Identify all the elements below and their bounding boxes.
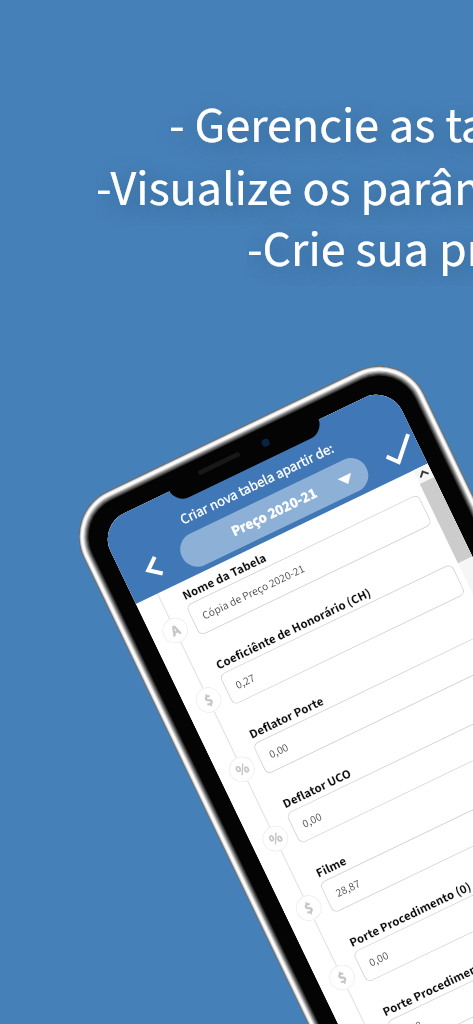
button[interactable]: Back — [130, 544, 178, 592]
staticText: Porte Procedimento (1) — [380, 947, 473, 1022]
staticText: - Gerencie as tabelas — [169, 91, 473, 162]
staticText: 0,27 — [233, 669, 258, 693]
staticText: Deflator Porte — [246, 692, 327, 744]
staticText: 0,00 — [366, 947, 392, 970]
staticText: Coeficiênte de Honorário (CH) — [213, 584, 375, 675]
staticText: Porte Procedimento (2) — [413, 1016, 473, 1024]
staticText: $ — [334, 967, 350, 989]
staticText: $ — [201, 689, 217, 712]
staticText: Nome da Tabela — [179, 549, 270, 606]
staticText: Deflator UCO — [280, 764, 355, 814]
staticText: -Visualize os parâmetros de — [96, 154, 473, 225]
staticText: 0,00 — [266, 739, 292, 762]
staticText: -Crie sua própria tabela — [247, 215, 473, 286]
button[interactable]: Preço 2020-21 — [174, 452, 374, 573]
staticText: Preço 2020-21 — [228, 483, 321, 542]
staticText: % — [232, 757, 253, 782]
staticText: Filme — [313, 852, 350, 883]
staticText: $ — [301, 897, 317, 920]
staticText: Criar nova tabela apartir de: — [176, 438, 338, 530]
button[interactable]: Save — [371, 423, 426, 479]
staticText: Cópia de Preço 2020-21 — [199, 560, 307, 623]
staticText: A — [167, 619, 184, 642]
staticText: 0,00 — [299, 808, 325, 831]
staticText: 2,78 — [400, 1016, 425, 1024]
staticText: % — [266, 827, 286, 851]
staticText: 28,87 — [333, 875, 363, 901]
staticText: Porte Procedimento (0) — [346, 877, 473, 953]
